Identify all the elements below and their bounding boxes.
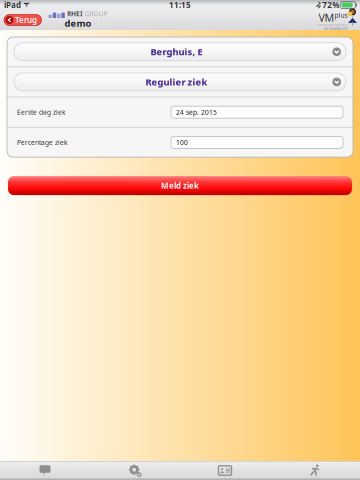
staticText: demo	[64, 17, 91, 29]
staticText: Eerste dag ziek	[17, 108, 66, 117]
staticText: iPad	[4, 0, 21, 10]
button[interactable]: Personen	[180, 466, 270, 475]
staticText: Percentage ziek	[17, 138, 68, 147]
staticText: the healthy HR	[323, 26, 347, 31]
staticText: Meld ziek	[161, 180, 199, 191]
button[interactable]: Instellingen	[90, 464, 180, 477]
staticText: 11:15	[169, 0, 191, 10]
staticText: 24 sep. 2015	[176, 108, 217, 117]
button[interactable]: Verzuim	[270, 464, 360, 476]
button[interactable]: Meld ziek	[0, 157, 360, 195]
staticText: 100	[176, 138, 188, 147]
button[interactable]: Terug	[4, 14, 41, 25]
button[interactable]: Regulier ziek	[7, 67, 353, 97]
staticText: VM	[318, 11, 334, 25]
staticText: plus	[334, 11, 347, 20]
staticText: Berghuis, E	[150, 46, 202, 58]
staticText: GROUP	[84, 9, 107, 18]
staticText: 72%	[322, 0, 339, 10]
button[interactable]: Berichten	[0, 465, 90, 476]
staticText: Regulier ziek	[145, 76, 207, 88]
staticText: Terug	[15, 15, 37, 25]
button[interactable]: Berghuis, E	[7, 37, 353, 66]
staticText: RHEI	[67, 9, 83, 18]
